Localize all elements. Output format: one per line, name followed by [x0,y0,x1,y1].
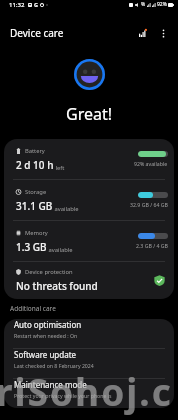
staticText: Memory [25,229,48,237]
staticText: 2 d 10 h [16,158,54,172]
staticText: available [53,205,79,213]
staticText: Great! [66,103,113,125]
staticText: Protect your privacy while your phone is [14,392,112,399]
staticText: Restart when needed : On [14,332,78,339]
button[interactable]: Software update [4,349,174,378]
staticText: 32.9 GB / 64 GB [130,201,168,208]
staticText: available [47,246,73,254]
button[interactable]: Memory [4,221,174,261]
staticText: 92% available [134,160,168,167]
staticText: 31.1 GB [16,199,53,213]
staticText: Software update [14,349,77,360]
staticText: % [141,1,146,8]
button[interactable]: Storage [4,180,174,220]
button[interactable]: More options [155,25,171,41]
staticText: left [54,164,65,172]
staticText: Maintenance mode [14,379,87,390]
button[interactable]: Device protection [4,262,174,299]
staticText: G [34,1,38,8]
staticText: 2.3 GB / 4 GB [136,242,168,249]
button[interactable]: Maintenance mode [4,379,174,408]
button[interactable]: Usage statistics [135,25,151,41]
staticText: 92% [157,1,167,8]
staticText: Device protection [25,268,73,276]
staticText: 1.3 GB [16,240,47,254]
button[interactable]: Auto optimisation [4,319,174,348]
staticText: Last checked on 8 February 2024 [14,362,94,369]
staticText: 11:32 [9,1,25,9]
staticText: riSohoj.c [0,366,173,416]
staticText: Auto optimisation [14,319,82,330]
staticText: Additional care [10,304,56,313]
button[interactable]: Battery [4,139,174,179]
staticText: Storage [25,188,47,196]
staticText: Battery [25,147,45,155]
staticText: No threats found [16,279,98,293]
staticText: Device care [10,26,64,40]
